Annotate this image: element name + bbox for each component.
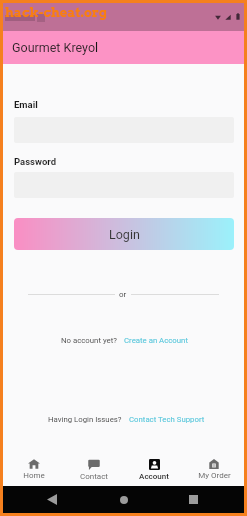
staticText: hack-cheat.org xyxy=(5,5,108,21)
button[interactable]: Home xyxy=(3,454,64,485)
button[interactable]: Login xyxy=(14,218,234,250)
button[interactable]: My Order xyxy=(184,454,244,485)
staticText: Contact xyxy=(80,472,108,481)
staticText: Password xyxy=(14,156,57,167)
staticText: No account yet? xyxy=(61,336,117,345)
button[interactable]: Contact Tech Support xyxy=(129,415,205,424)
button[interactable]: Create an Account xyxy=(124,336,188,345)
staticText: Having Login Issues? xyxy=(48,415,122,424)
button[interactable]: Account xyxy=(124,454,184,485)
staticText: or xyxy=(119,290,127,299)
staticText: Create an Account xyxy=(124,336,188,345)
staticText: Contact Tech Support xyxy=(129,415,205,424)
staticText: Home xyxy=(23,471,45,480)
staticText: My Order xyxy=(198,471,231,480)
other: Home xyxy=(120,496,128,504)
other: Back xyxy=(47,494,57,505)
staticText: Login xyxy=(109,227,140,242)
staticText: Gourmet Kreyol xyxy=(12,40,99,55)
button[interactable]: Contact xyxy=(64,454,124,485)
staticText: Email xyxy=(14,99,38,110)
staticText: Account xyxy=(139,472,169,481)
